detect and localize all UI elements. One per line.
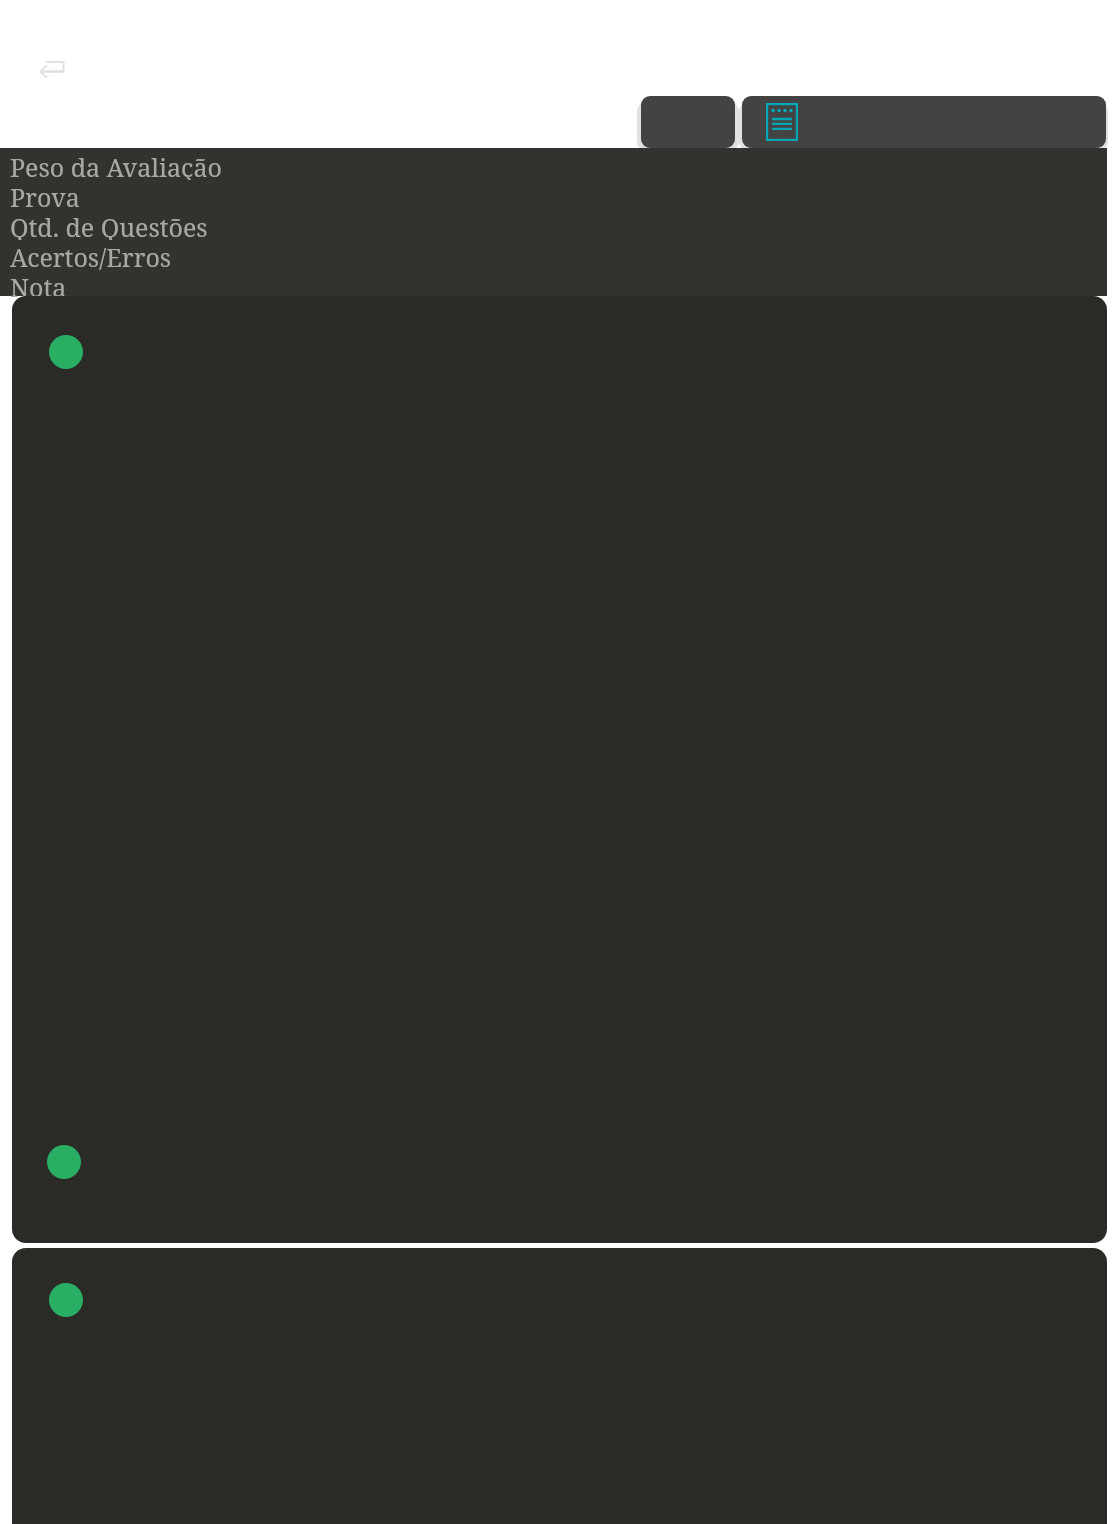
button[interactable] [12,296,1107,1243]
button[interactable]: Avaliacoes [742,96,1106,148]
button[interactable] [12,1248,1107,1524]
button[interactable]: Menu [641,96,735,148]
button[interactable]: Voltar [30,50,72,86]
staticText: Qtd. de Questões [10,210,208,240]
staticText: Peso da Avaliação [10,150,222,180]
staticText: Acertos/Erros [10,240,172,270]
staticText: Prova [10,180,80,210]
staticText: Nota [10,270,67,298]
